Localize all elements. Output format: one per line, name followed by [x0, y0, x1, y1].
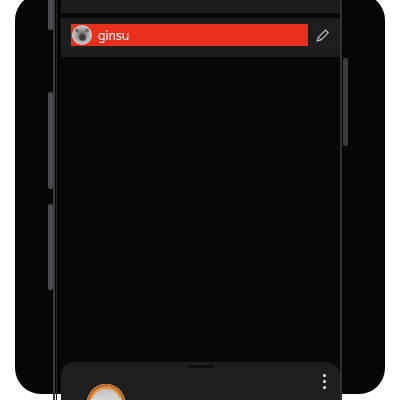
button[interactable]: Edit	[308, 21, 336, 49]
button[interactable]: ginsu	[71, 24, 308, 46]
staticText: ginsu	[98, 27, 130, 43]
button[interactable]: Profile photo	[83, 384, 129, 400]
button[interactable]: More options	[314, 371, 334, 391]
